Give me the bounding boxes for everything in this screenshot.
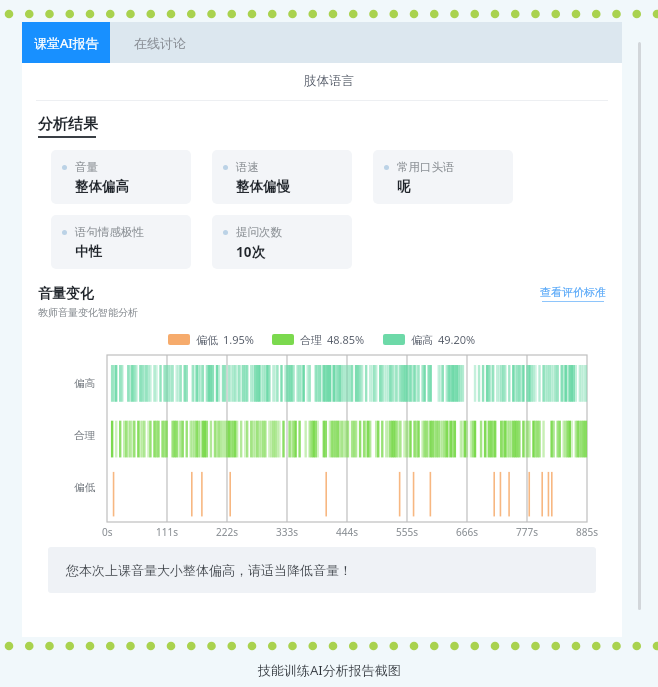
staticText: 中性 <box>75 243 102 260</box>
staticText: 语速 <box>236 160 259 174</box>
staticText: 49.20% <box>438 332 476 347</box>
staticText: 提问次数 <box>236 225 282 239</box>
staticText: 222s <box>216 525 238 539</box>
staticText: 666s <box>456 525 478 539</box>
staticText: 偏高 <box>411 333 433 347</box>
staticText: 音量变化 <box>38 285 94 303</box>
button[interactable]: 提问次数 <box>212 215 352 269</box>
staticText: 在线讨论 <box>134 35 186 51</box>
staticText: 111s <box>156 525 178 539</box>
staticText: 333s <box>276 525 298 539</box>
staticText: 0s <box>102 525 113 539</box>
button[interactable]: 课堂AI报告 <box>22 22 110 63</box>
staticText: 合理 <box>74 429 95 442</box>
button[interactable]: 在线讨论 <box>110 22 210 63</box>
staticText: 技能训练AI分析报告截图 <box>258 661 401 679</box>
staticText: 555s <box>396 525 418 539</box>
staticText: 语句情感极性 <box>75 225 144 239</box>
button[interactable]: 语句情感极性 <box>51 215 191 269</box>
staticText: 整体偏慢 <box>236 178 290 195</box>
staticText: 查看评价标准 <box>540 285 606 299</box>
staticText: 常用口头语 <box>397 160 455 174</box>
staticText: 教师音量变化智能分析 <box>38 306 138 319</box>
staticText: 课堂AI报告 <box>34 34 99 52</box>
button[interactable]: 音量 <box>51 150 191 204</box>
button[interactable]: 常用口头语 <box>373 150 513 204</box>
button[interactable]: 语速 <box>212 150 352 204</box>
staticText: 偏高 <box>74 377 95 390</box>
staticText: 1.95% <box>223 332 254 347</box>
staticText: 10次 <box>236 243 265 261</box>
staticText: 885s <box>576 525 598 539</box>
staticText: 分析结果 <box>38 115 98 134</box>
staticText: 肢体语言 <box>304 73 354 89</box>
staticText: 呢 <box>397 178 411 195</box>
staticText: 整体偏高 <box>75 178 129 195</box>
staticText: 444s <box>336 525 358 539</box>
staticText: 合理 <box>300 333 322 347</box>
staticText: 您本次上课音量大小整体偏高，请适当降低音量！ <box>66 562 352 578</box>
button[interactable]: 查看评价标准 <box>540 285 606 302</box>
staticText: 48.85% <box>327 332 365 347</box>
staticText: 偏低 <box>74 481 95 494</box>
staticText: 音量 <box>75 160 98 174</box>
staticText: 偏低 <box>196 333 218 347</box>
button[interactable]: 肢体语言 <box>36 63 622 101</box>
staticText: 777s <box>516 525 538 539</box>
